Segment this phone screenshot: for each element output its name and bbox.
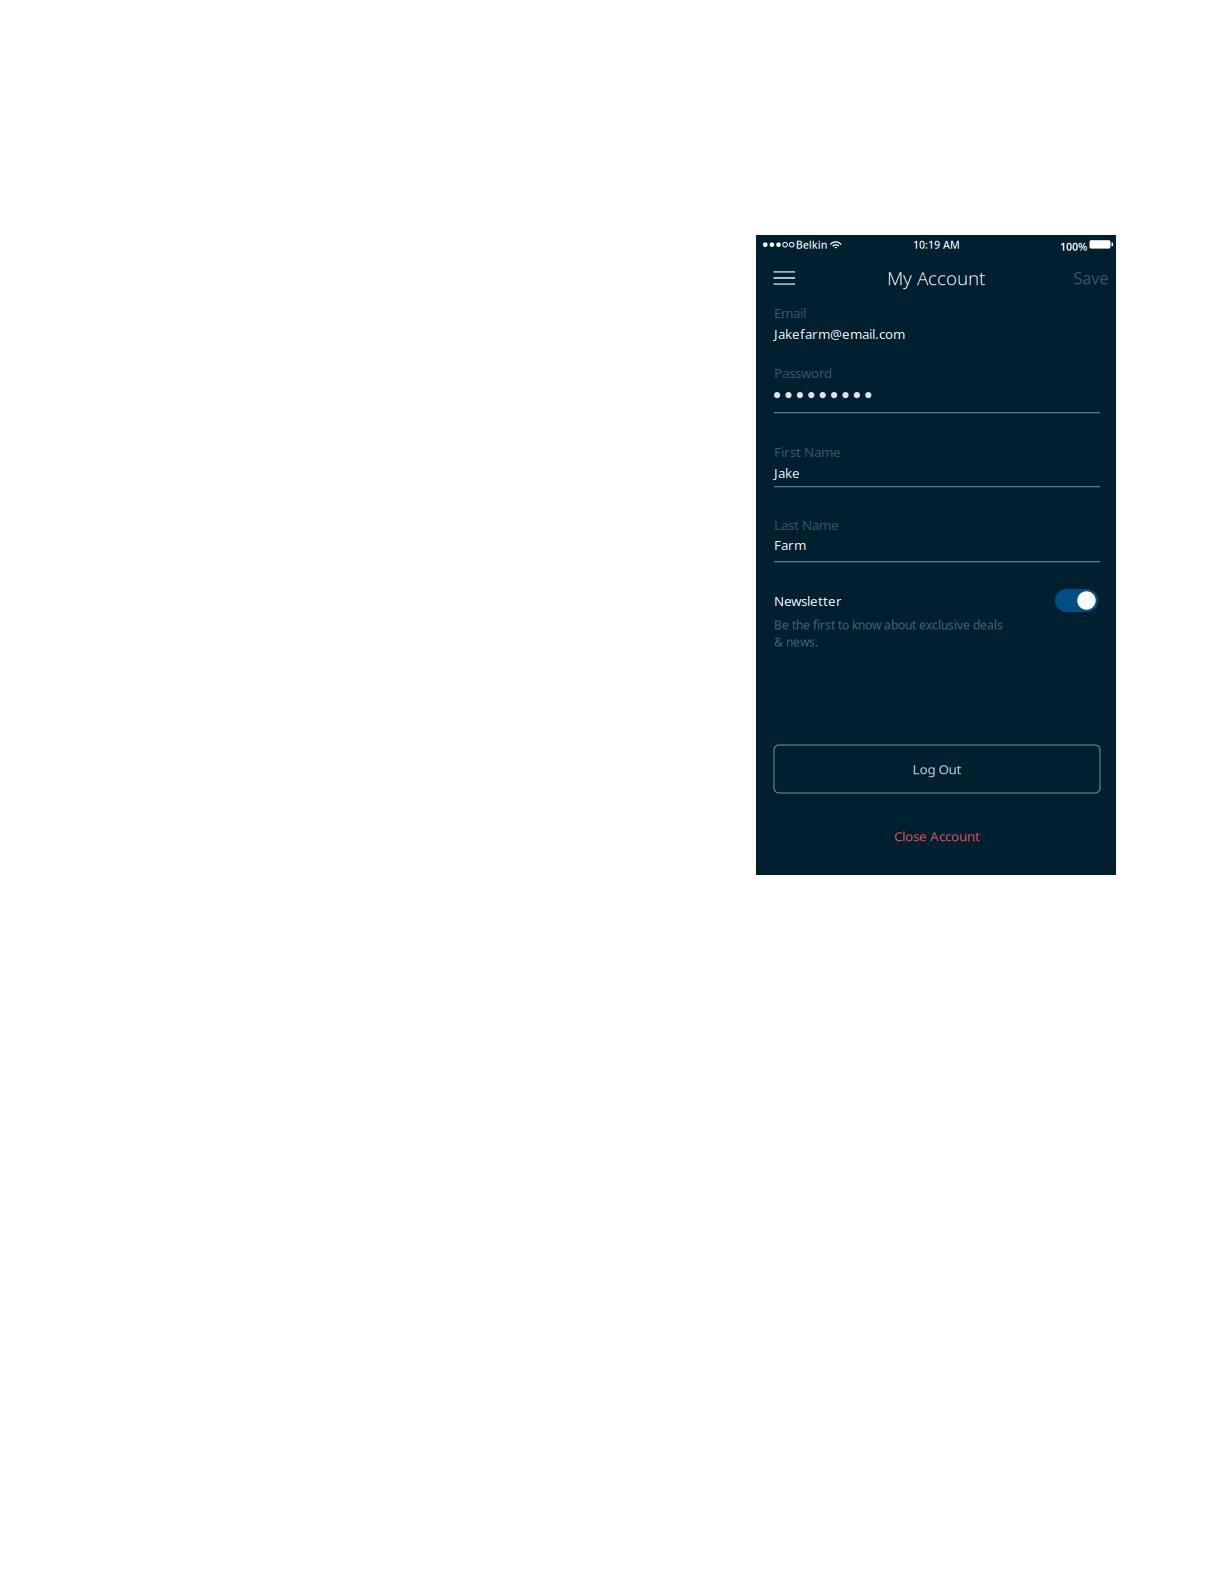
staticText: Jake bbox=[774, 464, 800, 482]
staticText: Email bbox=[774, 304, 806, 322]
staticText: Log Out bbox=[912, 760, 961, 778]
staticText: My Account bbox=[887, 266, 985, 290]
button[interactable]: Log Out bbox=[774, 745, 1100, 793]
staticText: Newsletter bbox=[774, 592, 842, 610]
staticText: Password bbox=[774, 364, 832, 382]
staticText: Close Account bbox=[894, 827, 980, 845]
staticText: Last Name bbox=[774, 516, 839, 534]
button[interactable]: Close Account bbox=[774, 823, 1100, 849]
staticText: Save bbox=[1073, 267, 1108, 289]
staticText: & news. bbox=[774, 634, 818, 650]
button[interactable]: Newsletter bbox=[1055, 589, 1098, 612]
staticText: Farm bbox=[774, 536, 806, 554]
staticText: Be the first to know about exclusive dea… bbox=[774, 617, 1003, 633]
staticText: First Name bbox=[774, 443, 841, 461]
button[interactable]: Menu bbox=[762, 258, 806, 298]
staticText: Belkin bbox=[796, 238, 828, 252]
staticText: 10:19 AM bbox=[913, 237, 960, 252]
button[interactable]: Save bbox=[1063, 258, 1119, 298]
staticText: 100% bbox=[1060, 239, 1087, 254]
staticText: Jakefarm@email.com bbox=[774, 325, 905, 343]
